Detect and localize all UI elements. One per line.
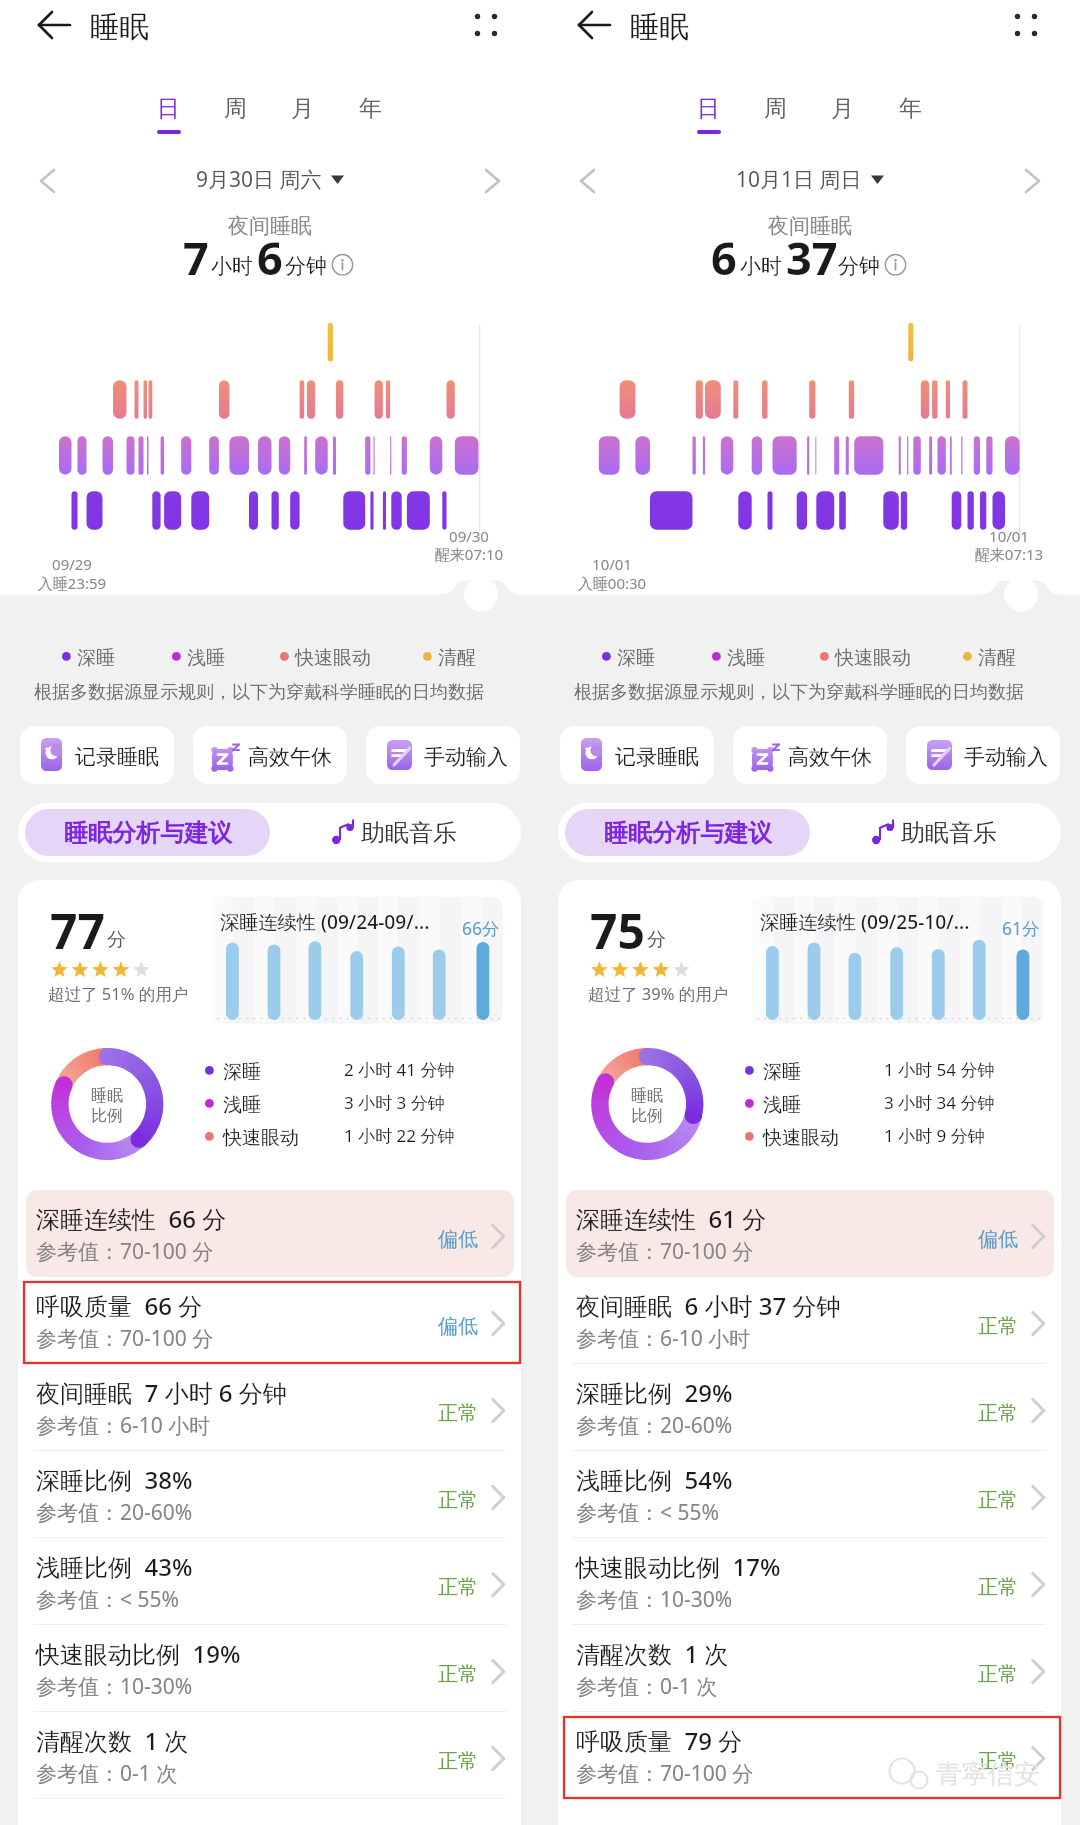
- button[interactable]: 呼吸质量 66 分: [26, 1277, 514, 1364]
- staticText: 分: [647, 928, 666, 952]
- staticText: 分: [107, 928, 126, 952]
- staticText: 深睡连续性 (09/24-09/...: [220, 908, 430, 934]
- button[interactable]: 睡眠分析与建议: [25, 809, 270, 856]
- staticText: 参考值：70-100 分: [576, 1237, 754, 1266]
- button[interactable]: 睡眠分析与建议: [565, 809, 810, 856]
- staticText: 正常: [978, 1488, 1018, 1513]
- staticText: 浅睡: [763, 1093, 801, 1117]
- staticText: 高效午休: [788, 744, 872, 770]
- staticText: 正常: [978, 1662, 1018, 1687]
- button[interactable]: 年: [344, 94, 396, 136]
- staticText: 浅睡: [223, 1093, 261, 1117]
- staticText: 深睡比例 29%: [576, 1376, 733, 1409]
- staticText: 2 小时 41 分钟: [344, 1058, 455, 1081]
- staticText: 睡眠: [90, 9, 149, 46]
- staticText: 月: [291, 94, 314, 123]
- button[interactable]: 日: [142, 94, 194, 136]
- staticText: 周: [764, 94, 787, 123]
- staticText: 分钟: [285, 253, 327, 279]
- staticText: 睡眠: [47, 1086, 167, 1106]
- staticText: 青寜信安: [936, 1758, 1040, 1791]
- staticText: 快速眼动比例 17%: [576, 1550, 781, 1583]
- staticText: 偏低: [438, 1314, 478, 1339]
- button[interactable]: More options: [464, 3, 508, 47]
- button[interactable]: 深睡比例 29%: [566, 1364, 1054, 1451]
- staticText: 10/01: [949, 526, 1069, 546]
- button[interactable]: 高效午休: [733, 726, 887, 784]
- button[interactable]: Next day: [468, 157, 516, 205]
- staticText: 快速眼动: [763, 1126, 839, 1150]
- button[interactable]: 助眠音乐: [274, 809, 514, 856]
- button[interactable]: 手动输入: [906, 726, 1060, 784]
- button[interactable]: 深睡连续性 61 分: [566, 1190, 1054, 1277]
- staticText: 参考值：10-30%: [576, 1585, 733, 1614]
- button[interactable]: 9月30日 周六: [150, 163, 390, 195]
- button[interactable]: Back: [571, 2, 617, 48]
- button[interactable]: 周: [749, 94, 801, 136]
- staticText: 睡眠: [587, 1086, 707, 1106]
- button[interactable]: 记录睡眠: [20, 726, 174, 784]
- staticText: 正常: [978, 1401, 1018, 1426]
- staticText: 参考值：20-60%: [36, 1498, 193, 1527]
- staticText: 正常: [438, 1575, 478, 1600]
- button[interactable]: 夜间睡眠 6 小时 37 分钟: [566, 1277, 1054, 1364]
- button[interactable]: 月: [276, 94, 328, 136]
- button[interactable]: 手动输入: [366, 726, 520, 784]
- staticText: 正常: [438, 1662, 478, 1687]
- staticText: 月: [831, 94, 854, 123]
- button[interactable]: 日: [682, 94, 734, 136]
- staticText: 1 小时 54 分钟: [884, 1058, 995, 1081]
- staticText: 偏低: [438, 1227, 478, 1252]
- staticText: 手动输入: [424, 744, 508, 770]
- button[interactable]: 清醒次数 1 次: [26, 1712, 514, 1799]
- staticText: 3 小时 3 分钟: [344, 1091, 445, 1114]
- staticText: 醒来07:10: [409, 544, 529, 564]
- button[interactable]: 助眠音乐: [814, 809, 1054, 856]
- button[interactable]: 深睡连续性 66 分: [26, 1190, 514, 1277]
- staticText: 深睡: [77, 646, 115, 670]
- staticText: 参考值：0-1 次: [36, 1759, 178, 1788]
- button[interactable]: 快速眼动比例 19%: [26, 1625, 514, 1712]
- staticText: 快速眼动: [223, 1126, 299, 1150]
- staticText: 夜间睡眠: [540, 213, 1080, 239]
- button[interactable]: 周: [209, 94, 261, 136]
- button[interactable]: 高效午休: [193, 726, 347, 784]
- staticText: 参考值：6-10 小时: [576, 1324, 751, 1353]
- button[interactable]: 清醒次数 1 次: [566, 1625, 1054, 1712]
- staticText: 睡眠: [630, 9, 689, 46]
- staticText: 清醒: [438, 646, 476, 670]
- staticText: 正常: [438, 1488, 478, 1513]
- button[interactable]: Sleep duration info: [885, 254, 907, 276]
- button[interactable]: Previous day: [564, 157, 612, 205]
- staticText: 参考值：20-60%: [576, 1411, 733, 1440]
- staticText: 清醒次数 1 次: [576, 1637, 729, 1670]
- staticText: 66分: [462, 916, 500, 940]
- staticText: 深睡: [617, 646, 655, 670]
- staticText: 正常: [978, 1749, 1018, 1774]
- button[interactable]: 记录睡眠: [560, 726, 714, 784]
- staticText: 正常: [978, 1314, 1018, 1339]
- staticText: 深睡连续性 61 分: [576, 1202, 767, 1235]
- button[interactable]: 夜间睡眠 7 小时 6 分钟: [26, 1364, 514, 1451]
- staticText: 睡眠分析与建议: [604, 818, 772, 848]
- staticText: 小时: [211, 253, 253, 279]
- button[interactable]: 年: [884, 94, 936, 136]
- button[interactable]: Previous day: [24, 157, 72, 205]
- button[interactable]: 月: [816, 94, 868, 136]
- button[interactable]: 浅睡比例 43%: [26, 1538, 514, 1625]
- staticText: 10月1日 周日: [736, 165, 862, 194]
- button[interactable]: Back: [31, 2, 77, 48]
- button[interactable]: Next day: [1008, 157, 1056, 205]
- button[interactable]: 浅睡比例 54%: [566, 1451, 1054, 1538]
- button[interactable]: 10月1日 周日: [690, 163, 930, 195]
- staticText: 1 小时 22 分钟: [344, 1124, 455, 1147]
- staticText: 参考值：< 55%: [36, 1585, 179, 1614]
- button[interactable]: 深睡比例 38%: [26, 1451, 514, 1538]
- button[interactable]: More options: [1004, 3, 1048, 47]
- button[interactable]: 快速眼动比例 17%: [566, 1538, 1054, 1625]
- staticText: 快速眼动: [835, 646, 911, 670]
- staticText: 参考值：0-1 次: [576, 1672, 718, 1701]
- staticText: 超过了 39% 的用户: [588, 982, 729, 1005]
- button[interactable]: 呼吸质量 79 分: [566, 1712, 1054, 1799]
- button[interactable]: Sleep duration info: [332, 254, 354, 276]
